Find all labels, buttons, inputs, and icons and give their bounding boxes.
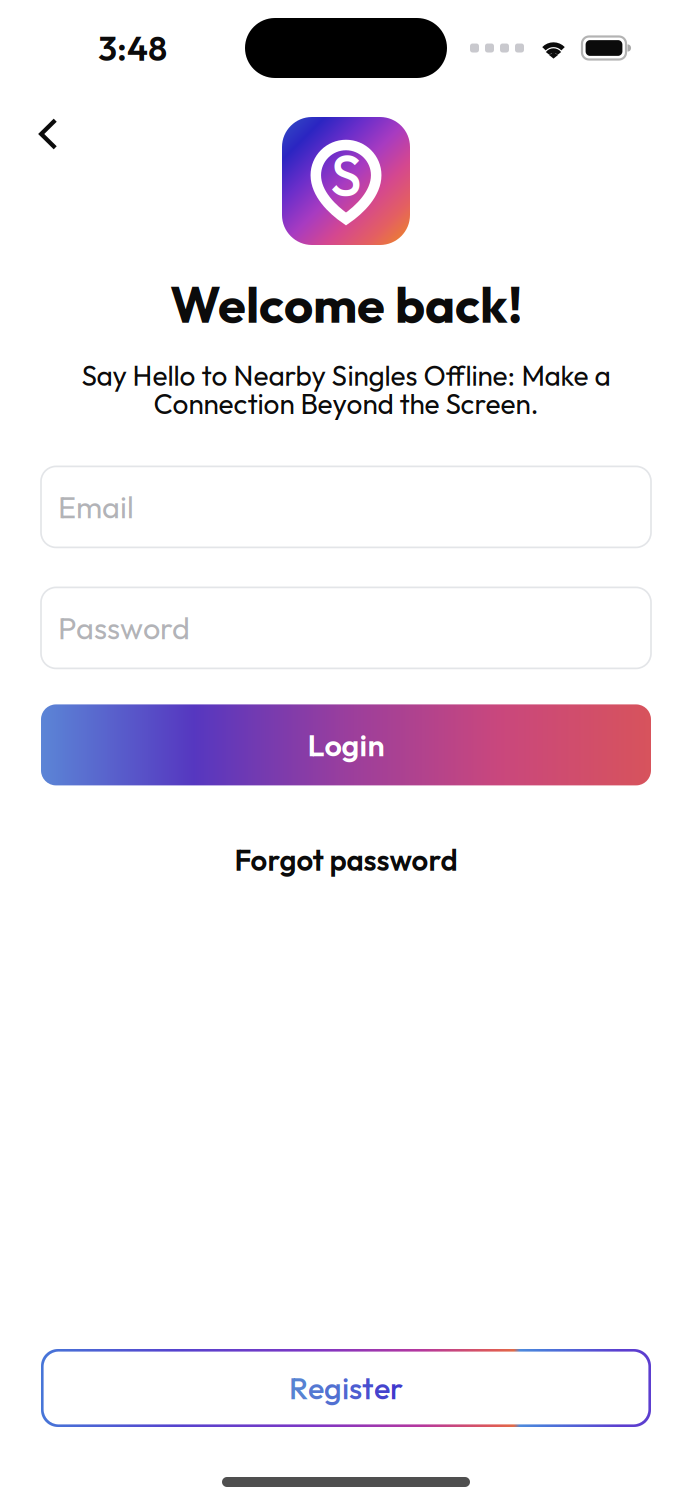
staticText: Say Hello to Nearby Singles Offline: Mak… (81, 358, 610, 393)
staticText: i (342, 1369, 349, 1407)
staticText: e (308, 1369, 324, 1407)
button[interactable]: Back (0, 106, 79, 162)
staticText: 3:48 (98, 26, 167, 70)
staticText: Welcome back! (170, 272, 522, 336)
staticText: g (324, 1369, 342, 1407)
staticText: e (374, 1369, 390, 1407)
staticText: Forgot password (234, 841, 457, 878)
button[interactable]: R (41, 1349, 651, 1427)
staticText: Connection Beyond the Screen. (153, 386, 538, 421)
staticText: s (349, 1369, 362, 1407)
button[interactable]: Login (41, 704, 651, 785)
staticText: S (330, 140, 361, 210)
staticText: t (362, 1369, 374, 1407)
button[interactable]: Password (41, 587, 651, 668)
staticText: Password (58, 609, 190, 647)
staticText: Email (58, 488, 134, 526)
button[interactable]: Forgot password (225, 832, 466, 887)
button[interactable]: Email (41, 466, 651, 547)
staticText: r (390, 1369, 403, 1407)
staticText: R (289, 1369, 308, 1407)
staticText: Login (307, 726, 384, 764)
